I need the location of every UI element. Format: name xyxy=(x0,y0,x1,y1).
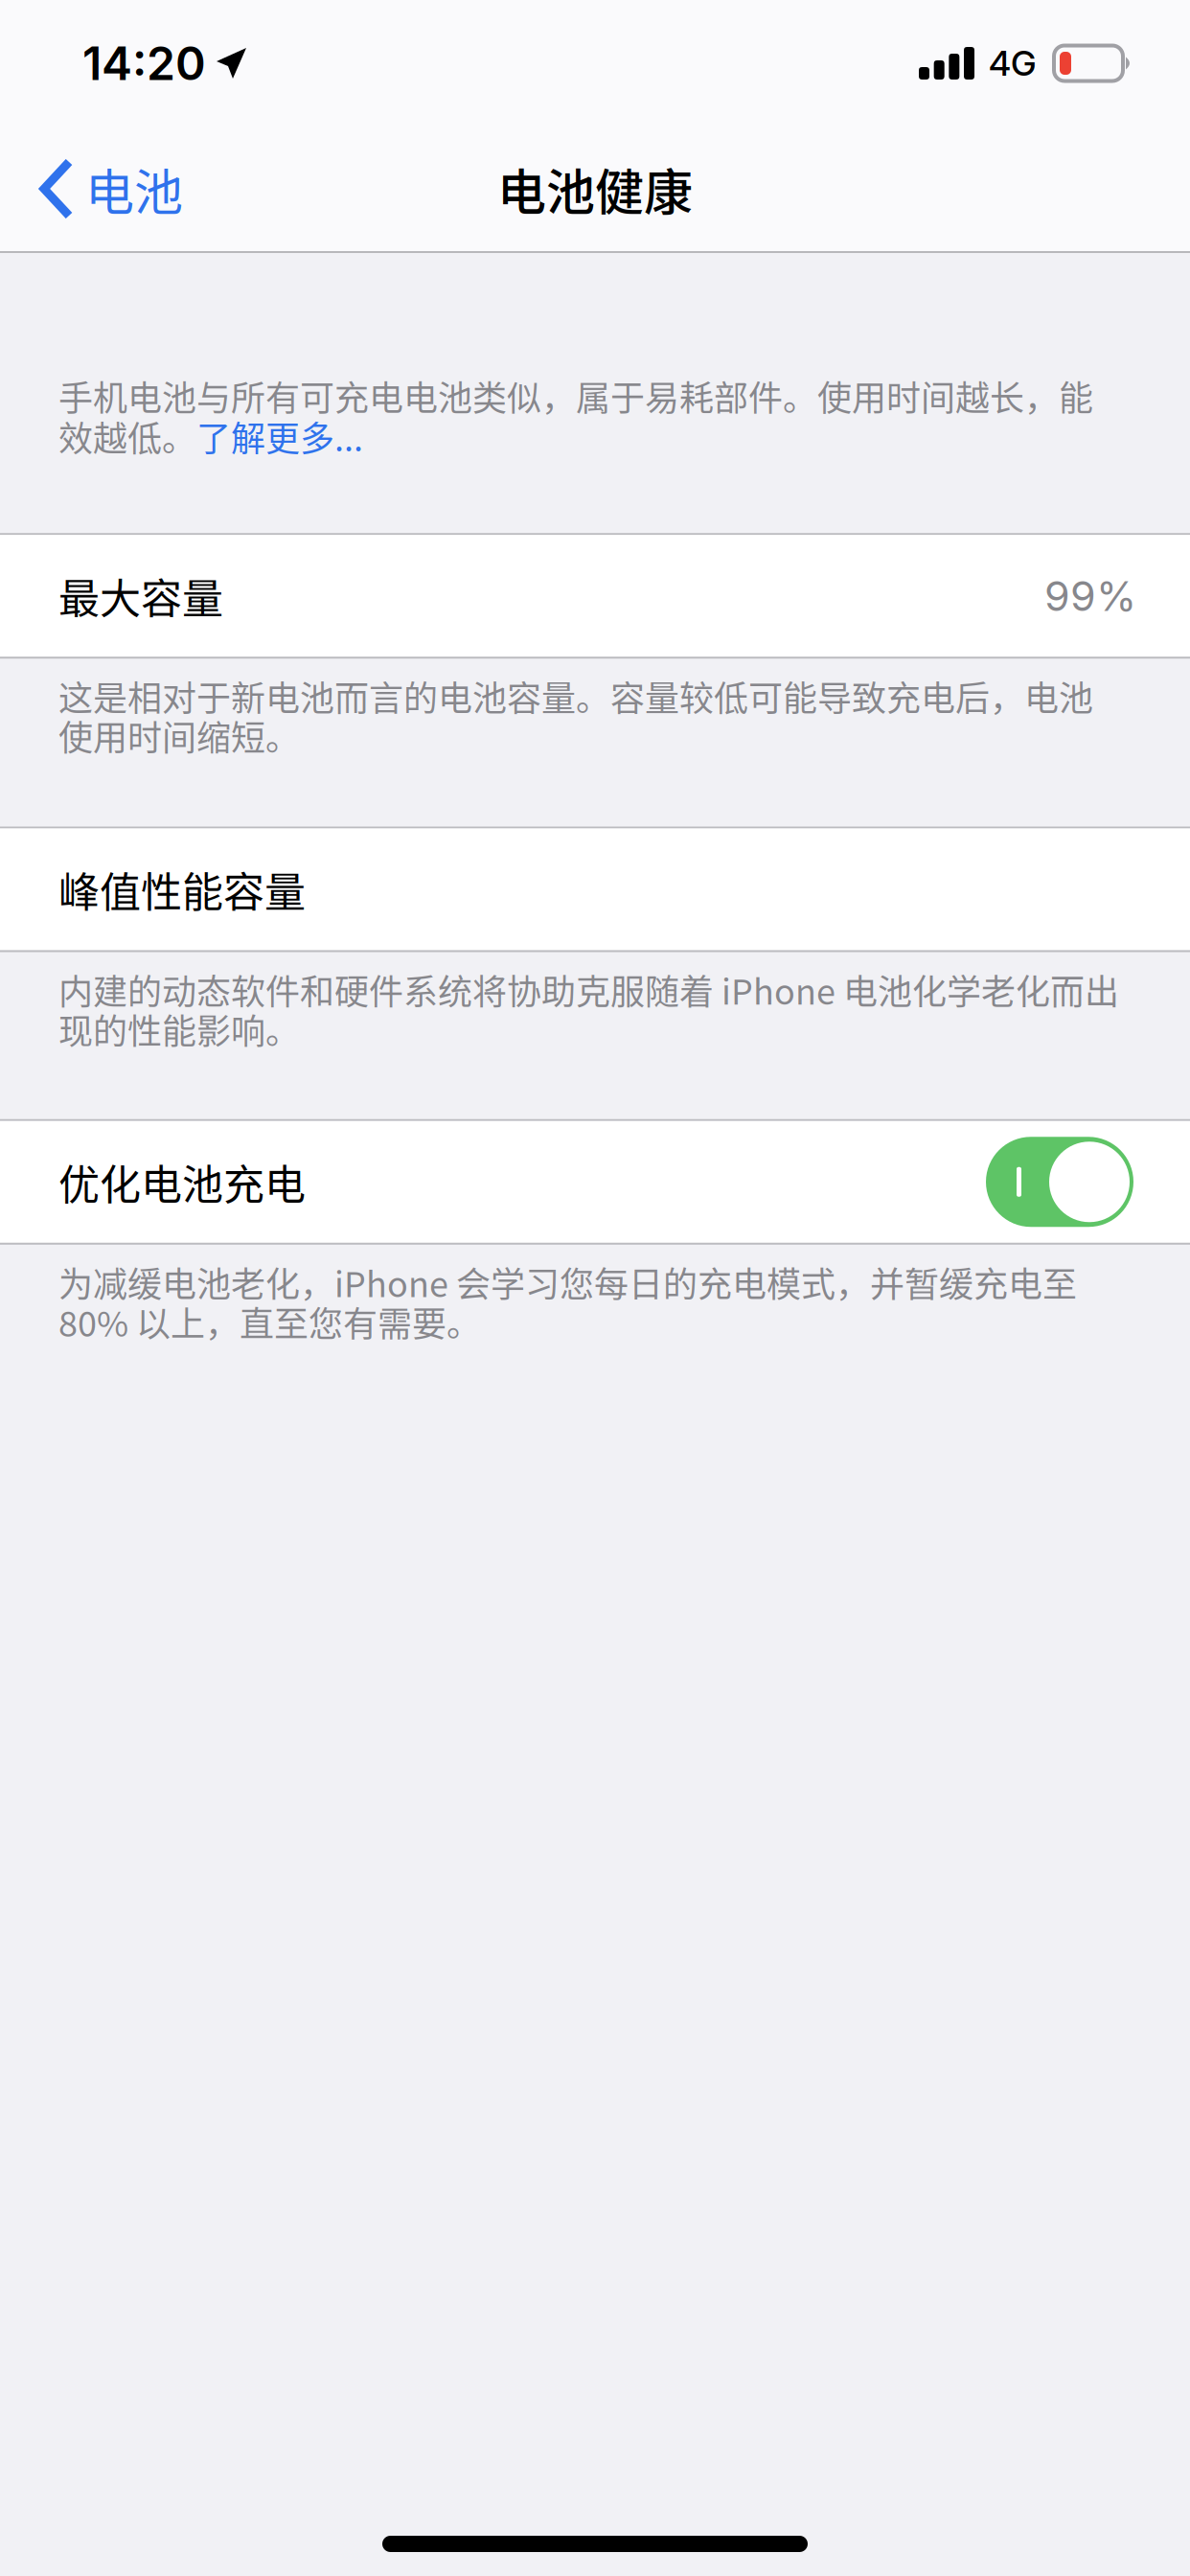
button[interactable]: 峰值性能容量 xyxy=(0,827,1190,952)
staticText: 了解更多... xyxy=(196,411,363,461)
staticText: 14:20 xyxy=(82,35,206,91)
staticText: 4G xyxy=(989,42,1037,84)
staticText: 99% xyxy=(1044,571,1136,621)
button[interactable]: 了解更多... xyxy=(196,411,363,461)
staticText: 最大容量 xyxy=(58,566,223,626)
staticText: 为减缓电池老化，iPhone 会学习您每日的充电模式，并暂缓充电至 80% 以上… xyxy=(58,1257,1077,1347)
button[interactable]: 电池 xyxy=(0,126,206,251)
staticText: 手机电池与所有可充电电池类似，属于易耗部件。使用时间越长，能 xyxy=(58,371,1093,421)
staticText: 优化电池充电 xyxy=(58,1152,306,1212)
staticText: 峰值性能容量 xyxy=(58,860,306,919)
button[interactable]: 优化电池充电 xyxy=(0,1119,1190,1245)
staticText: 效越低。 xyxy=(58,411,196,461)
staticText: 电池 xyxy=(85,153,183,224)
staticText: 电池健康 xyxy=(497,153,693,224)
staticText: 这是相对于新电池而言的电池容量。容量较低可能导致充电后，电池使用时间缩短。 xyxy=(58,671,1093,761)
staticText: 内建的动态软件和硬件系统将协助克服随着 iPhone 电池化学老化而出现的性能影… xyxy=(58,965,1119,1054)
